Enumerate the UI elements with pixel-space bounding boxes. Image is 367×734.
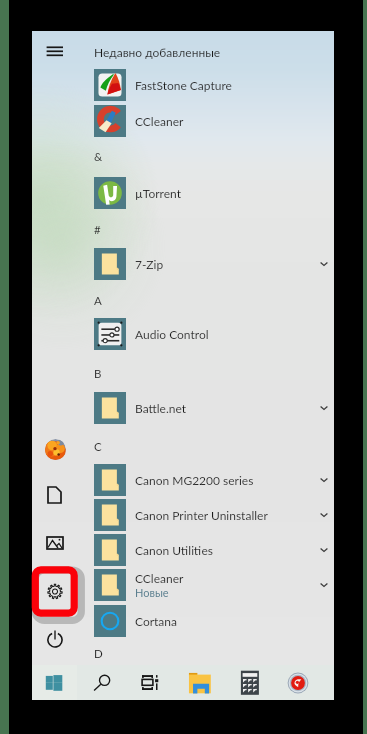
button[interactable]: Canon Printer Uninstaller (92, 498, 334, 532)
staticText: C (94, 440, 102, 454)
staticText: Canon Printer Uninstaller (135, 508, 268, 522)
button[interactable]: Canon MG2200 series (92, 463, 334, 497)
button[interactable]: Power (32, 617, 78, 663)
staticText: 7-Zip (135, 257, 164, 271)
staticText: Canon Utilities (135, 543, 213, 557)
button[interactable]: File Explorer (177, 665, 223, 700)
staticText: Новые (135, 586, 169, 599)
button[interactable]: Search (79, 665, 125, 700)
staticText: & (94, 150, 103, 164)
staticText: A (94, 294, 102, 308)
button[interactable]: Settings (32, 568, 78, 615)
button[interactable]: Account (32, 426, 78, 472)
staticText: CCleaner (135, 571, 184, 585)
staticText: B (94, 367, 102, 381)
staticText: D (94, 647, 103, 661)
button[interactable]: CCleaner (92, 568, 334, 602)
staticText: FastStone Capture (135, 78, 232, 92)
staticText: # (94, 223, 101, 237)
button[interactable]: Battle.net (92, 391, 334, 425)
staticText: Battle.net (135, 401, 187, 415)
button[interactable]: Pictures (32, 520, 78, 566)
button[interactable]: Cortana (92, 604, 334, 638)
button[interactable]: 7-Zip (92, 247, 334, 281)
button[interactable]: Documents (32, 472, 78, 518)
button[interactable]: Start (33, 665, 79, 700)
button[interactable]: FastStone Capture (92, 68, 334, 102)
button[interactable]: µTorrent (92, 176, 334, 210)
button[interactable]: Task View (127, 665, 173, 700)
staticText: Audio Control (135, 327, 209, 341)
button[interactable]: Application (275, 665, 321, 700)
staticText: Недавно добавленные (94, 45, 221, 59)
button[interactable]: Audio Control (92, 317, 334, 351)
button[interactable]: Calculator (227, 665, 273, 700)
staticText: Canon MG2200 series (135, 473, 254, 487)
staticText: CCleaner (135, 114, 184, 128)
button[interactable]: CCleaner (92, 104, 334, 138)
staticText: Cortana (135, 614, 177, 628)
staticText: µTorrent (135, 186, 181, 200)
button[interactable]: Canon Utilities (92, 533, 334, 567)
button[interactable]: Menu (32, 31, 78, 77)
